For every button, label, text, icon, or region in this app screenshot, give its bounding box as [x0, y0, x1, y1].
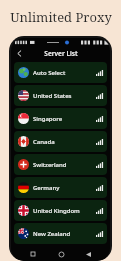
button[interactable]: United States: [14, 85, 107, 106]
button[interactable]: Switzerland: [14, 154, 107, 175]
staticText: United States: [33, 92, 72, 100]
button[interactable]: Singapore: [14, 108, 107, 129]
other: Signal strength: [96, 184, 103, 191]
staticText: Server List: [44, 49, 78, 58]
other: Signal strength: [96, 115, 103, 122]
staticText: Unlimited Proxy: [10, 8, 112, 26]
other: Signal strength: [96, 161, 103, 168]
staticText: Singapore: [33, 115, 63, 123]
staticText: United Kingdom: [33, 207, 80, 215]
staticText: Canada: [33, 138, 55, 146]
button[interactable]: Back: [14, 48, 25, 59]
staticText: Germany: [33, 184, 60, 192]
other: Signal strength: [96, 92, 103, 99]
other: Signal strength: [96, 230, 103, 237]
button[interactable]: Auto Select: [14, 62, 107, 83]
button[interactable]: Recents: [27, 248, 39, 260]
other: Signal strength: [96, 207, 103, 214]
staticText: Auto Select: [33, 69, 66, 77]
button[interactable]: Germany: [14, 177, 107, 198]
staticText: New Zealand: [33, 230, 71, 238]
button[interactable]: Back: [82, 248, 94, 260]
other: Signal strength: [96, 69, 103, 76]
button[interactable]: United Kingdom: [14, 200, 107, 221]
button[interactable]: Home: [55, 248, 67, 260]
button[interactable]: New Zealand: [14, 223, 107, 244]
button[interactable]: Canada: [14, 131, 107, 152]
other: Signal strength: [96, 138, 103, 145]
button[interactable]: Back: [11, 47, 110, 60]
staticText: Switzerland: [33, 161, 67, 169]
